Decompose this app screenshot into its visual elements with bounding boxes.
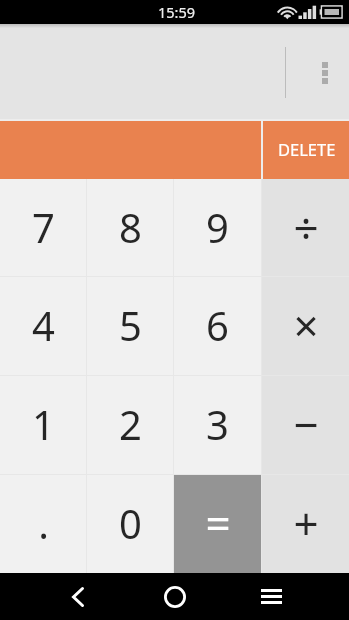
staticText: 0 bbox=[119, 496, 142, 550]
button[interactable]: 4 bbox=[0, 277, 86, 375]
button[interactable]: . bbox=[0, 475, 86, 573]
staticText: 8 bbox=[119, 200, 142, 254]
button[interactable]: × bbox=[262, 277, 349, 375]
staticText: = bbox=[205, 493, 231, 553]
button[interactable]: ÷ bbox=[262, 179, 349, 276]
button[interactable]: 7 bbox=[0, 179, 86, 276]
button[interactable]: = bbox=[174, 475, 261, 573]
staticText: 3 bbox=[206, 397, 229, 451]
staticText: 1 bbox=[32, 397, 55, 451]
button[interactable]: 6 bbox=[174, 277, 261, 375]
button[interactable]: More options bbox=[302, 48, 349, 97]
button[interactable]: 8 bbox=[87, 179, 173, 276]
button[interactable]: − bbox=[262, 376, 349, 474]
staticText: + bbox=[293, 493, 319, 553]
button[interactable]: Back bbox=[30, 573, 125, 620]
staticText: ÷ bbox=[293, 197, 319, 257]
staticText: DELETE bbox=[278, 138, 336, 160]
button[interactable]: 2 bbox=[87, 376, 173, 474]
staticText: . bbox=[38, 496, 49, 550]
button[interactable]: 1 bbox=[0, 376, 86, 474]
button[interactable]: 0 bbox=[87, 475, 173, 573]
staticText: 6 bbox=[206, 298, 229, 352]
button[interactable]: Recent apps bbox=[224, 573, 319, 620]
staticText: 9 bbox=[206, 200, 229, 254]
button[interactable]: 5 bbox=[87, 277, 173, 375]
staticText: 2 bbox=[119, 397, 142, 451]
button[interactable]: 9 bbox=[174, 179, 261, 276]
button[interactable]: 3 bbox=[174, 376, 261, 474]
staticText: 4 bbox=[32, 298, 55, 352]
staticText: 15:59 bbox=[158, 2, 196, 22]
staticText: 5 bbox=[119, 298, 142, 352]
button[interactable]: Home bbox=[127, 573, 222, 620]
button[interactable]: + bbox=[262, 475, 349, 573]
staticText: × bbox=[293, 295, 319, 355]
staticText: 7 bbox=[32, 200, 55, 254]
staticText: − bbox=[293, 394, 319, 454]
button[interactable]: DELETE bbox=[263, 121, 349, 179]
